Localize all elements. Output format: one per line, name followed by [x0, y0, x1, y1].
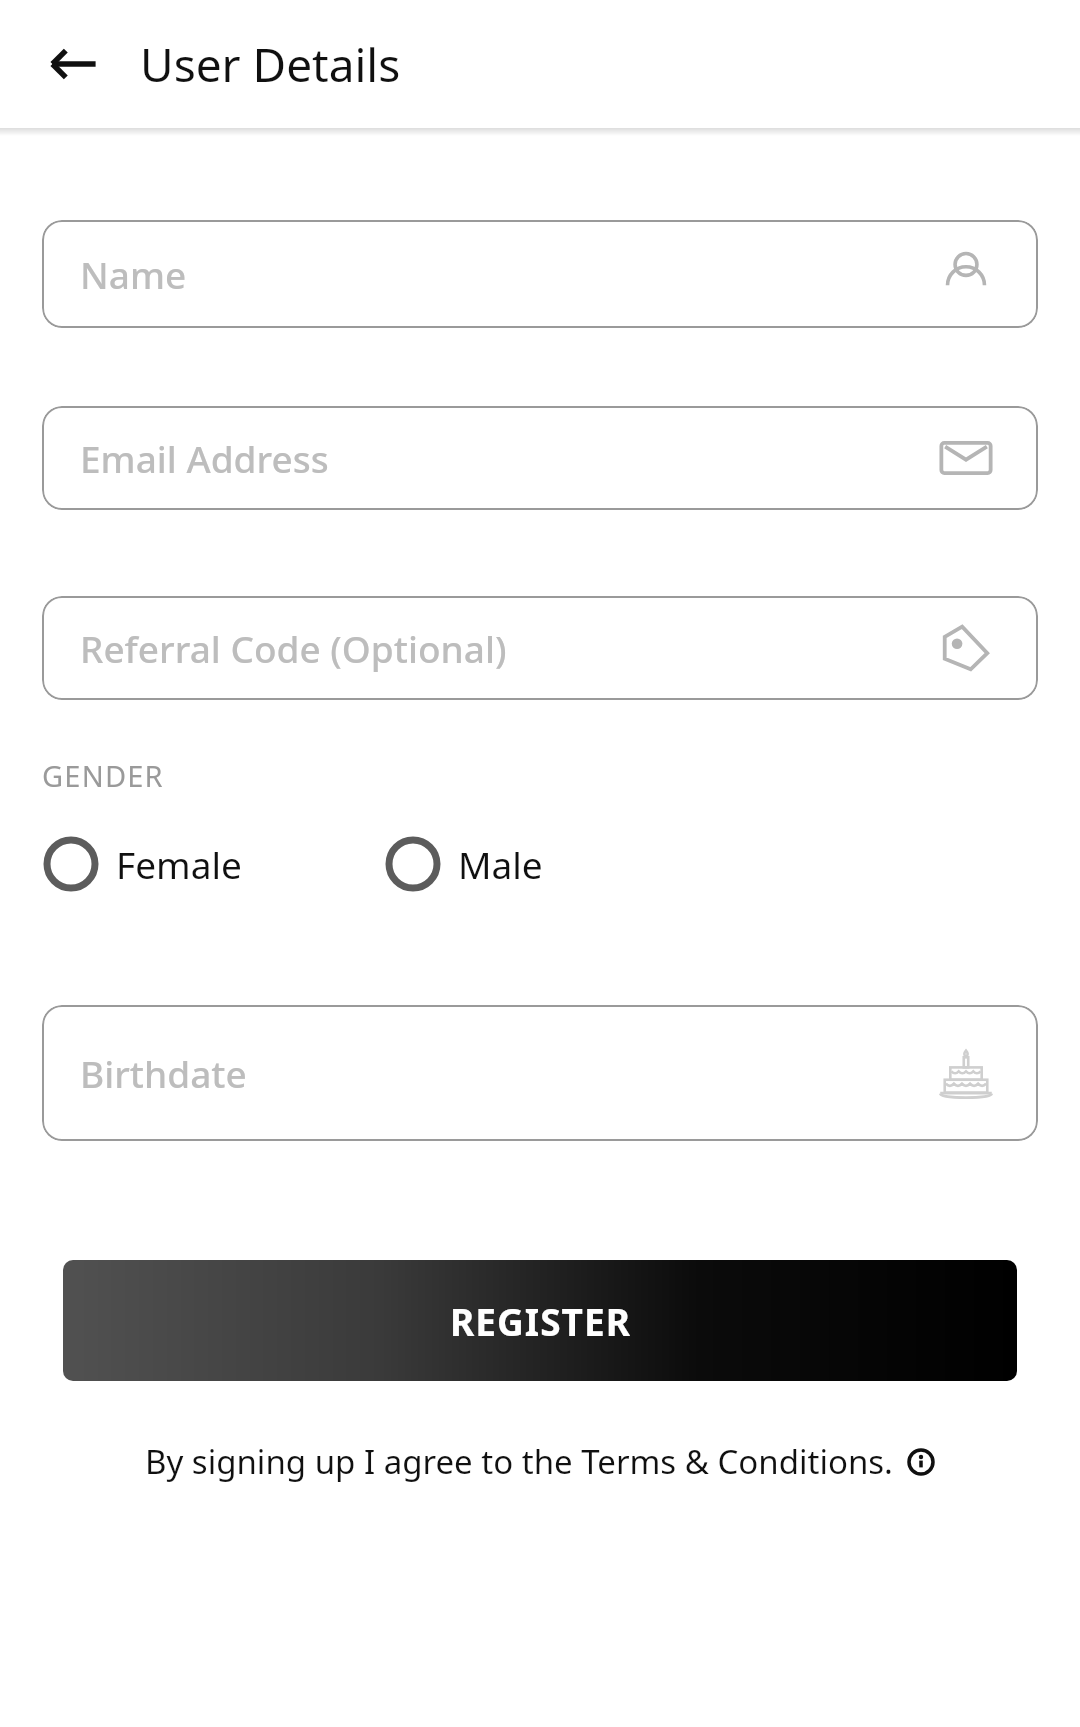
button[interactable]: REGISTER	[63, 1260, 1017, 1381]
staticText: User Details	[140, 33, 401, 96]
button[interactable]: Referral Code (Optional)	[42, 596, 1038, 700]
button[interactable]: Terms info	[907, 1448, 935, 1476]
button[interactable]: Birthdate	[42, 1005, 1038, 1141]
staticText: Birthdate	[80, 1048, 247, 1098]
staticText: Email Address	[80, 433, 329, 483]
staticText: Name	[80, 249, 187, 299]
staticText: REGISTER	[450, 1296, 631, 1346]
staticText: Referral Code (Optional)	[80, 623, 507, 673]
staticText: GENDER	[42, 756, 164, 795]
staticText: By signing up I agree to the Terms & Con…	[145, 1439, 893, 1484]
button[interactable]: Female	[42, 835, 242, 893]
staticText: Female	[116, 839, 242, 889]
button[interactable]: Male	[384, 835, 543, 893]
staticText: Male	[458, 839, 543, 889]
button[interactable]: Name	[42, 220, 1038, 328]
button[interactable]: Email Address	[42, 406, 1038, 510]
button[interactable]: Back	[38, 28, 110, 100]
